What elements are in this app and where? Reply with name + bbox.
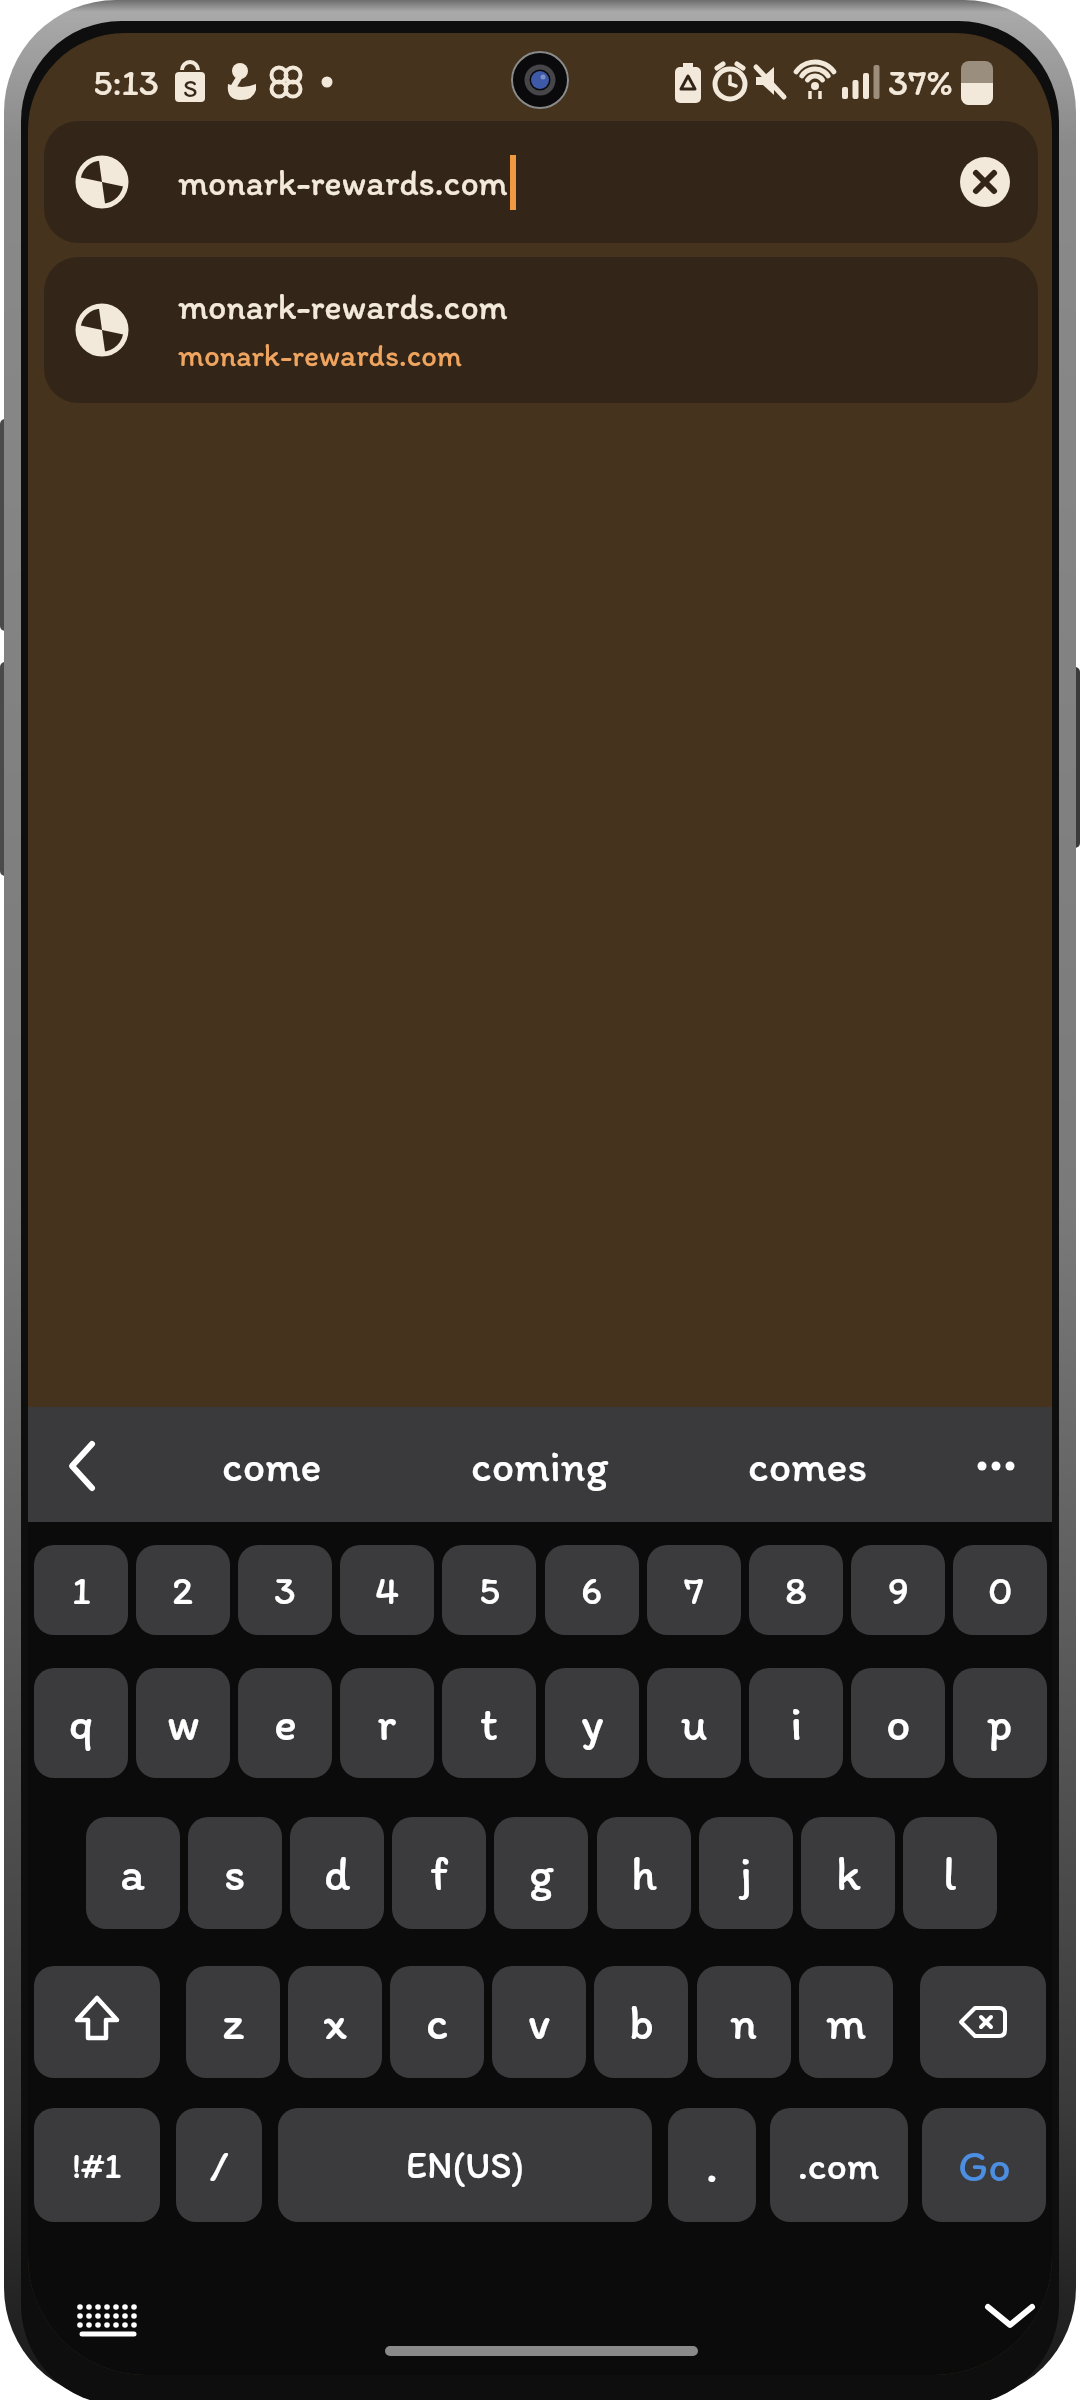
button[interactable]: c [390,1966,484,2078]
staticText: g [529,1844,554,1902]
button[interactable] [978,2285,1042,2349]
staticText: 7 [684,1566,704,1614]
staticText: 0 [988,1566,1013,1614]
staticText: t [480,1694,499,1752]
staticText: m [826,1993,867,2051]
staticText: j [740,1844,752,1902]
staticText: i [790,1694,803,1752]
staticText: monark-rewards.com [178,337,462,374]
button[interactable]: t [442,1668,536,1778]
button[interactable] [34,1966,160,2078]
button[interactable]: 1 [34,1545,128,1635]
button[interactable] [920,1966,1046,2078]
staticText: 5:13 [93,60,159,104]
button[interactable]: i [749,1668,843,1778]
button[interactable]: x [288,1966,382,2078]
button[interactable]: come [192,1423,352,1507]
button[interactable]: a [86,1817,180,1929]
staticText: comes [748,1439,868,1492]
staticText: 37% [888,60,953,104]
button[interactable]: q [34,1668,128,1778]
staticText: b [629,1993,654,2051]
staticText: 3 [274,1566,296,1614]
staticText: S [183,72,198,103]
staticText: / [210,2139,229,2192]
staticText: come [222,1439,322,1492]
button[interactable]: j [699,1817,793,1929]
staticText: 8 [785,1566,807,1614]
staticText: h [631,1844,657,1902]
button[interactable]: 7 [647,1545,741,1635]
button[interactable]: v [492,1966,586,2078]
button[interactable]: EN(US) [278,2108,652,2222]
button[interactable]: s [188,1817,282,1929]
button[interactable]: 4 [340,1545,434,1635]
button[interactable] [968,1436,1036,1496]
button[interactable]: f [392,1817,486,1929]
button[interactable] [54,1436,114,1496]
button[interactable]: 0 [953,1545,1047,1635]
button[interactable]: u [647,1668,741,1778]
button[interactable]: comes [728,1423,888,1507]
button[interactable]: r [340,1668,434,1778]
button[interactable]: h [597,1817,691,1929]
button[interactable]: / [176,2108,262,2222]
button[interactable]: l [903,1817,997,1929]
staticText: s [224,1844,246,1902]
button[interactable]: o [851,1668,945,1778]
button[interactable]: .com [770,2108,908,2222]
button[interactable]: 9 [851,1545,945,1635]
staticText: !#1 [72,2144,122,2187]
button[interactable]: d [290,1817,384,1929]
button[interactable] [44,257,1038,403]
staticText: 9 [888,1566,909,1614]
button[interactable]: Go [922,2108,1046,2222]
staticText: q [69,1694,94,1752]
button[interactable]: 6 [545,1545,639,1635]
button[interactable]: 3 [238,1545,332,1635]
staticText: l [943,1844,957,1902]
staticText: monark-rewards.com [178,285,508,328]
button[interactable]: p [953,1668,1047,1778]
button[interactable]: k [801,1817,895,1929]
button[interactable]: . [668,2108,756,2222]
button[interactable]: m [799,1966,893,2078]
button[interactable]: 2 [136,1545,230,1635]
button[interactable]: e [238,1668,332,1778]
button[interactable]: g [494,1817,588,1929]
button[interactable]: coming [452,1423,628,1507]
staticText: c [426,1993,449,2051]
button[interactable]: 8 [749,1545,843,1635]
staticText: 2 [172,1566,194,1614]
button[interactable]: 5 [442,1545,536,1635]
staticText: o [886,1694,911,1752]
staticText: k [836,1844,861,1902]
button[interactable]: y [545,1668,639,1778]
staticText: w [167,1694,200,1752]
staticText: a [120,1844,146,1902]
staticText: 5 [479,1566,500,1614]
staticText: v [528,1993,551,2051]
staticText: z [222,1993,245,2051]
staticText: monark-rewards.com [178,161,508,204]
staticText: e [274,1694,297,1752]
button[interactable]: !#1 [34,2108,160,2222]
button[interactable]: w [136,1668,230,1778]
staticText: y [581,1694,604,1752]
staticText: p [987,1694,1013,1752]
button[interactable] [44,121,1038,243]
button[interactable] [68,2289,148,2353]
staticText: 1 [72,1566,91,1614]
staticText: 4 [375,1566,400,1614]
button[interactable]: b [594,1966,688,2078]
staticText: . [706,2136,718,2194]
staticText: n [730,1993,758,2051]
staticText: 6 [581,1566,603,1614]
staticText: x [323,1993,347,2051]
staticText: u [681,1694,708,1752]
button[interactable]: z [186,1966,280,2078]
button[interactable] [959,156,1011,208]
staticText: EN(US) [406,2142,524,2188]
staticText: Go [958,2139,1011,2192]
button[interactable]: n [697,1966,791,2078]
